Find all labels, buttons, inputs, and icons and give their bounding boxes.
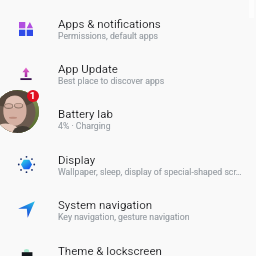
button[interactable]: App Update — [0, 51, 256, 96]
staticText: System navigation — [58, 198, 153, 211]
button[interactable]: Theme & lockscreen — [0, 233, 256, 256]
staticText: Battery lab — [58, 107, 113, 120]
staticText: Permissions, default apps — [58, 31, 159, 41]
staticText: 4% · Charging — [58, 121, 111, 131]
button[interactable]: Apps & notifications — [0, 6, 256, 51]
staticText: App Update — [58, 62, 118, 75]
staticText: Wallpaper, sleep, display of special-sha… — [58, 167, 242, 177]
staticText: Apps & notifications — [58, 17, 161, 30]
staticText: Key navigation, gesture navigation — [58, 212, 190, 222]
button[interactable]: Profile photo — [0, 90, 39, 133]
staticText: Best place to discover apps — [58, 76, 165, 86]
button[interactable]: Display — [0, 142, 256, 187]
button[interactable]: Battery lab — [0, 96, 256, 141]
staticText: Display — [58, 153, 96, 166]
staticText: Theme & lockscreen — [58, 244, 162, 256]
staticText: 1 — [30, 91, 36, 102]
button[interactable]: System navigation — [0, 187, 256, 232]
